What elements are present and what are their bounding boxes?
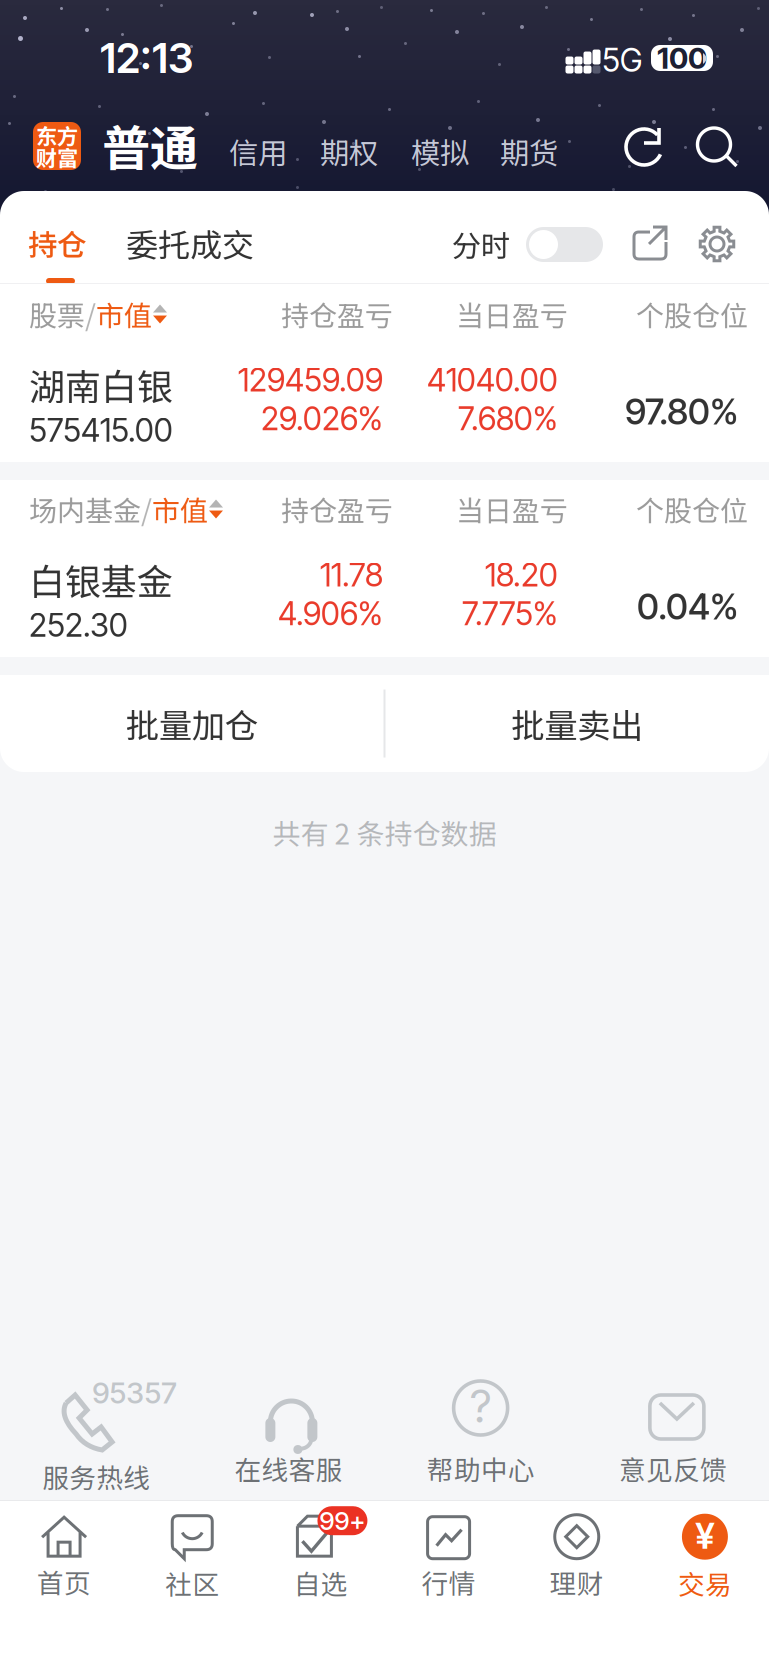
button[interactable]: 在线客服 <box>192 1377 384 1488</box>
button[interactable]: Export <box>632 224 668 262</box>
staticText: 意见反馈 <box>619 1449 727 1488</box>
staticText: 7.680% <box>458 399 558 438</box>
staticText: 个股仓位 <box>636 489 748 529</box>
button[interactable]: 意见反馈 <box>577 1377 769 1488</box>
staticText: 自选 <box>293 1563 347 1602</box>
button[interactable]: 期货 <box>500 130 558 172</box>
button[interactable]: 委托成交 <box>126 224 254 262</box>
staticText: 个股仓位 <box>636 294 748 334</box>
button[interactable]: 湖南白银 <box>0 351 769 455</box>
staticText: 41040.00 <box>427 361 558 399</box>
button[interactable]: 行情 <box>384 1515 513 1601</box>
staticText: 7.775% <box>462 594 558 633</box>
staticText: 市值 <box>152 489 208 529</box>
staticText: 共有 2 条持仓数据 <box>272 812 496 852</box>
staticText: 持仓盈亏 <box>281 294 393 334</box>
staticText: 29.026% <box>261 399 383 438</box>
staticText: 期货 <box>500 130 558 172</box>
button[interactable]: Time share <box>526 227 603 262</box>
staticText: 分时 <box>452 223 510 265</box>
staticText: 持仓 <box>28 222 86 264</box>
staticText: 95357 <box>92 1375 176 1410</box>
staticText: 11.78 <box>320 556 383 594</box>
staticText: 模拟 <box>411 130 469 172</box>
button[interactable]: Settings <box>698 225 736 263</box>
button[interactable]: 信用 <box>229 130 287 172</box>
staticText: 市值 <box>96 294 152 334</box>
staticText: 129459.09 <box>238 361 383 399</box>
staticText: 当日盈亏 <box>456 489 568 529</box>
button[interactable]: 99+ <box>256 1514 384 1602</box>
button[interactable]: ? <box>384 1377 577 1488</box>
staticText: 当日盈亏 <box>456 294 568 334</box>
staticText: 股票 <box>29 294 85 334</box>
staticText: 服务热线 <box>42 1457 150 1496</box>
button[interactable]: 首页 <box>0 1515 128 1601</box>
staticText: 行情 <box>422 1563 476 1601</box>
staticText: 白银基金 <box>29 554 173 606</box>
staticText: ? <box>470 1379 491 1433</box>
staticText: 批量卖出 <box>511 699 643 748</box>
button[interactable]: 模拟 <box>411 130 469 172</box>
staticText: 信用 <box>229 130 287 172</box>
button[interactable]: ¥ <box>641 1514 769 1602</box>
staticText: 东方 <box>36 120 78 150</box>
staticText: 期权 <box>320 130 378 172</box>
button[interactable]: 东方 <box>33 122 81 170</box>
staticText: 575415.00 <box>29 411 173 449</box>
staticText: 在线客服 <box>234 1449 342 1488</box>
staticText: 湖南白银 <box>29 359 173 411</box>
button[interactable]: 社区 <box>128 1514 256 1602</box>
staticText: 首页 <box>37 1562 91 1601</box>
staticText: 252.30 <box>29 606 128 644</box>
staticText: / <box>85 294 96 334</box>
staticText: 5G <box>602 41 642 79</box>
staticText: 社区 <box>165 1564 219 1602</box>
button[interactable]: 普通 <box>102 119 198 171</box>
button[interactable]: Refresh <box>625 125 665 169</box>
staticText: 帮助中心 <box>427 1449 535 1488</box>
staticText: 委托成交 <box>126 220 254 266</box>
button[interactable]: 期权 <box>320 130 378 172</box>
staticText: 100 <box>657 40 707 76</box>
button[interactable]: 批量加仓 <box>0 675 383 772</box>
button[interactable]: 批量卖出 <box>385 675 769 772</box>
staticText: 99+ <box>319 1505 365 1536</box>
staticText: 场内基金 <box>29 489 141 529</box>
button[interactable]: Search <box>694 125 734 164</box>
staticText: ¥ <box>695 1514 714 1557</box>
staticText: 批量加仓 <box>126 699 258 748</box>
staticText: 12:13 <box>100 33 193 83</box>
staticText: 财富 <box>36 142 78 172</box>
button[interactable]: 持仓 <box>28 224 86 262</box>
button[interactable]: 95357 <box>0 1369 192 1496</box>
staticText: 4.906% <box>278 594 383 633</box>
staticText: 普通 <box>102 110 198 180</box>
button[interactable]: 理财 <box>513 1515 641 1601</box>
staticText: 交易 <box>678 1564 732 1602</box>
staticText: 持仓盈亏 <box>281 489 393 529</box>
staticText: 18.20 <box>485 556 558 594</box>
button[interactable]: 白银基金 <box>0 546 769 650</box>
staticText: 97.80% <box>625 390 738 433</box>
staticText: / <box>141 489 152 529</box>
staticText: 0.04% <box>637 585 738 628</box>
staticText: 理财 <box>550 1563 604 1601</box>
